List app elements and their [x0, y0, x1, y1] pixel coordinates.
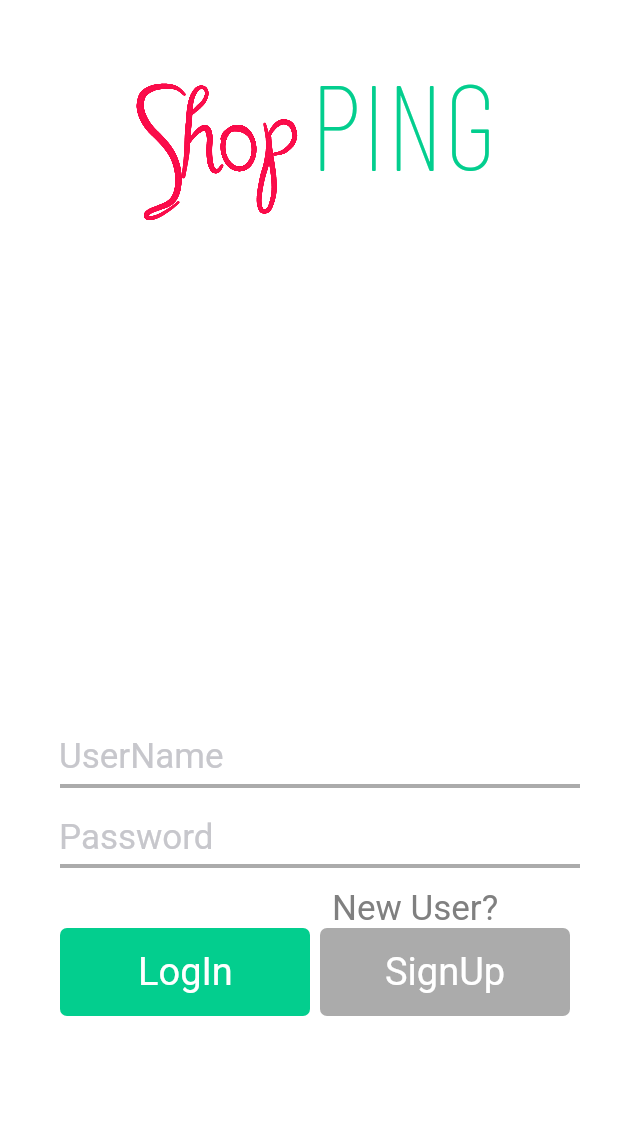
- staticText: PING: [310, 51, 497, 195]
- staticText: UserName: [59, 736, 224, 777]
- staticText: SignUp: [385, 950, 506, 995]
- staticText: LogIn: [138, 950, 233, 995]
- staticText: Password: [59, 817, 214, 858]
- button[interactable]: SignUp: [320, 928, 570, 1016]
- staticText: New User?: [332, 888, 499, 929]
- button[interactable]: LogIn: [60, 928, 310, 1016]
